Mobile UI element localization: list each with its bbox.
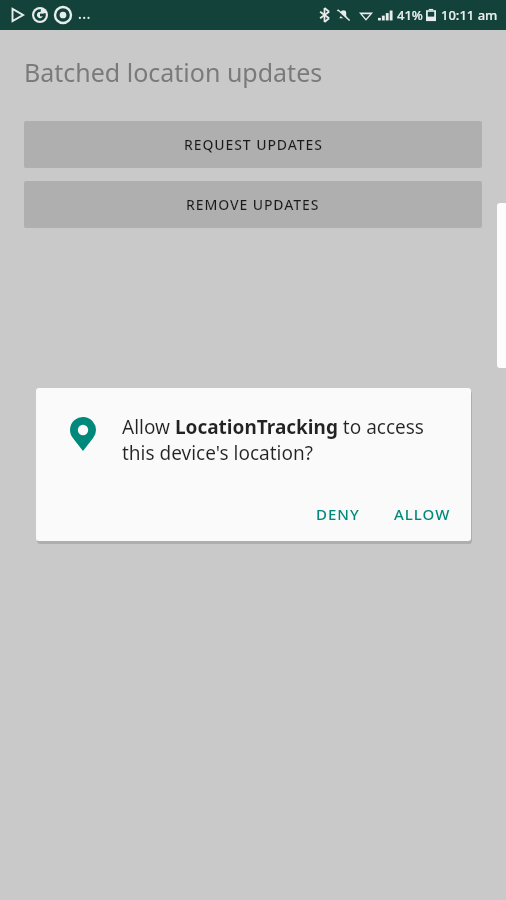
button[interactable]: ALLOW [382, 495, 463, 533]
staticText: ALLOW [394, 504, 451, 524]
button[interactable]: REMOVE UPDATES [24, 181, 482, 228]
button[interactable]: DENY [304, 495, 372, 533]
staticText: 10:11 am [441, 6, 498, 24]
staticText: Allow LocationTracking to access this de… [122, 414, 452, 466]
staticText: Batched location updates [24, 55, 323, 89]
staticText: REQUEST UPDATES [184, 135, 323, 154]
staticText: REMOVE UPDATES [186, 195, 320, 214]
staticText: DENY [316, 504, 360, 524]
staticText: 41% [397, 6, 423, 24]
button[interactable]: REQUEST UPDATES [24, 121, 482, 168]
